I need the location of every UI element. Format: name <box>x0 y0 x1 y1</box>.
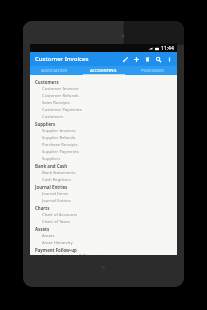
button[interactable]: Customers <box>35 113 173 120</box>
button[interactable]: Supplier Refunds <box>35 134 173 141</box>
staticText: Supplier Refunds <box>42 135 76 141</box>
staticText: Customer Invoices <box>42 86 79 92</box>
staticText: Charts <box>35 205 50 211</box>
button[interactable]: Search <box>153 52 164 66</box>
button[interactable]: Asset Hierarchy <box>35 239 173 246</box>
button[interactable]: Payment Follow-up <box>35 246 173 253</box>
staticText: Customers <box>35 79 59 85</box>
button[interactable]: Chart of Taxes <box>35 218 173 225</box>
staticText: Journal Entries <box>35 184 68 190</box>
staticText: ASSOCIATION <box>41 68 68 73</box>
button[interactable]: Suppliers <box>35 120 173 127</box>
staticText: PURCHASES <box>141 68 164 73</box>
button[interactable]: Charts <box>35 204 173 211</box>
button[interactable]: Assets <box>35 232 173 239</box>
button[interactable]: Suppliers <box>35 155 173 162</box>
staticText: Supplier Payments <box>42 149 79 155</box>
button[interactable]: Journal Items <box>35 190 173 197</box>
staticText: Chart of Accounts <box>42 212 77 218</box>
button[interactable]: Delete <box>142 52 153 66</box>
staticText: 11:44 <box>161 45 174 52</box>
button[interactable]: Purchase Receipts <box>35 141 173 148</box>
staticText: Cash Registers <box>42 177 71 183</box>
button[interactable]: More options <box>164 52 175 66</box>
button[interactable]: Supplier Payments <box>35 148 173 155</box>
button[interactable]: PURCHASES <box>128 66 177 75</box>
staticText: Chart of Taxes <box>42 219 70 225</box>
button[interactable]: Edit <box>120 52 131 66</box>
button[interactable]: ACCOUNTING <box>79 66 128 75</box>
button[interactable]: Assets <box>35 225 173 232</box>
staticText: Bank Statements <box>42 170 76 176</box>
staticText: Payment Follow-up <box>35 247 77 253</box>
staticText: Suppliers <box>35 121 56 127</box>
button[interactable]: Customer Payments <box>35 106 173 113</box>
button[interactable]: Bank Statements <box>35 169 173 176</box>
button[interactable]: Journal Entries <box>35 197 173 204</box>
button[interactable]: ASSOCIATION <box>30 66 79 75</box>
button[interactable]: Sales Receipts <box>35 99 173 106</box>
staticText: Journal Entries <box>42 198 71 204</box>
staticText: Suppliers <box>42 156 61 162</box>
button[interactable]: Cash Registers <box>35 176 173 183</box>
button[interactable]: Add <box>131 52 142 66</box>
button[interactable]: Journal Entries <box>35 183 173 190</box>
button[interactable]: Reconcile Invoices & Payments <box>35 253 173 255</box>
staticText: Sales Receipts <box>42 100 70 106</box>
button[interactable]: Customer Invoices <box>35 85 173 92</box>
button[interactable]: Chart of Accounts <box>35 211 173 218</box>
staticText: Customers <box>42 114 64 120</box>
button[interactable]: Bank and Cash <box>35 162 173 169</box>
staticText: ACCOUNTING <box>90 68 117 73</box>
button[interactable]: Customer Refunds <box>35 92 173 99</box>
staticText: Assets <box>35 226 50 232</box>
staticText: Assets <box>42 233 55 239</box>
button[interactable]: Customers <box>35 78 173 85</box>
staticText: Asset Hierarchy <box>42 240 73 246</box>
staticText: Supplier Invoices <box>42 128 76 134</box>
staticText: Reconcile Invoices & Payments <box>42 253 103 255</box>
button[interactable]: Supplier Invoices <box>35 127 173 134</box>
staticText: Customer Invoices <box>35 55 89 63</box>
staticText: Bank and Cash <box>35 163 68 169</box>
staticText: Customer Refunds <box>42 93 79 99</box>
staticText: Purchase Receipts <box>42 142 78 148</box>
staticText: Journal Items <box>42 191 69 197</box>
staticText: Customer Payments <box>42 107 82 113</box>
